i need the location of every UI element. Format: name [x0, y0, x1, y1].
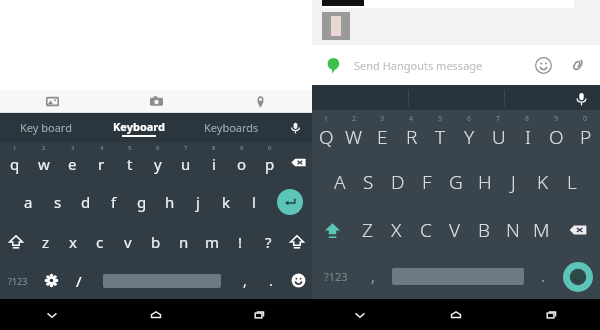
button[interactable]: g	[128, 182, 156, 222]
button[interactable]: Keyboard	[92, 113, 185, 142]
button[interactable]: 3	[368, 110, 397, 158]
button[interactable]: Shift	[282, 222, 312, 262]
button[interactable]: Space	[386, 254, 530, 299]
button[interactable]: Emoji	[556, 254, 600, 299]
button[interactable]: /	[66, 262, 92, 299]
button[interactable]: Key board	[0, 113, 92, 142]
staticText: V	[449, 217, 461, 243]
button[interactable]: M	[527, 206, 556, 254]
button[interactable]: Backspace	[556, 206, 600, 254]
button[interactable]: n	[170, 222, 198, 262]
staticText: 0	[583, 114, 588, 124]
button[interactable]: S	[354, 158, 383, 206]
button[interactable]: Keyboards	[185, 113, 278, 142]
button[interactable]: F	[412, 158, 441, 206]
button[interactable]: G	[441, 158, 470, 206]
button[interactable]: ,	[232, 262, 258, 299]
button[interactable]: a	[14, 182, 43, 222]
button[interactable]: Emoji	[530, 52, 556, 78]
button[interactable]: 4	[87, 142, 116, 182]
button[interactable]: Shift	[0, 222, 32, 262]
button[interactable]: 8	[200, 142, 228, 182]
button[interactable]: 5	[426, 110, 455, 158]
button[interactable]: f	[100, 182, 128, 222]
staticText: .	[541, 267, 545, 286]
button[interactable]: Emoji	[284, 262, 312, 299]
button[interactable]: 0	[256, 142, 284, 182]
button[interactable]: 2	[340, 110, 368, 158]
button[interactable]: Recents	[208, 299, 312, 330]
button[interactable]: 9	[542, 110, 571, 158]
button[interactable]: Shift	[312, 206, 352, 254]
button[interactable]: 1	[0, 142, 29, 182]
button[interactable]: j	[184, 182, 212, 222]
button[interactable]: Gallery	[0, 90, 104, 113]
button[interactable]: Back	[312, 299, 408, 330]
button[interactable]: Location	[208, 90, 312, 113]
button[interactable]: Voice input	[278, 113, 312, 142]
button[interactable]: m	[198, 222, 226, 262]
button[interactable]: 5	[116, 142, 144, 182]
button[interactable]: h	[156, 182, 184, 222]
button[interactable]: z	[32, 222, 59, 262]
button[interactable]: Camera	[104, 90, 208, 113]
staticText: ?123	[8, 275, 28, 287]
button[interactable]: .	[530, 254, 556, 299]
button[interactable]: c	[86, 222, 114, 262]
button[interactable]: C	[411, 206, 440, 254]
staticText: i	[212, 154, 216, 174]
button[interactable]: b	[142, 222, 170, 262]
button[interactable]: B	[469, 206, 498, 254]
staticText: 3	[71, 144, 75, 152]
button[interactable]: ,	[360, 254, 386, 299]
button[interactable]: 4	[397, 110, 426, 158]
button[interactable]: v	[114, 222, 142, 262]
button[interactable]: A	[326, 158, 354, 206]
button[interactable]: 6	[455, 110, 484, 158]
button[interactable]: 9	[228, 142, 256, 182]
button[interactable]: Recents	[504, 299, 600, 330]
button[interactable]: l	[240, 182, 268, 222]
button[interactable]: 3	[58, 142, 87, 182]
button[interactable]: !	[226, 222, 254, 262]
button[interactable]: L	[557, 158, 586, 206]
button[interactable]: Space	[92, 262, 232, 299]
button[interactable]: Enter	[268, 182, 312, 222]
button[interactable]: Voice input	[572, 89, 590, 107]
button[interactable]: Z	[352, 206, 382, 254]
button[interactable]: ?123	[0, 262, 36, 299]
button[interactable]: Attach	[564, 52, 590, 78]
button[interactable]: X	[382, 206, 411, 254]
button[interactable]: 7	[172, 142, 200, 182]
button[interactable]: .	[258, 262, 284, 299]
button[interactable]: k	[212, 182, 240, 222]
button[interactable]: Back	[0, 299, 104, 330]
button[interactable]: Home	[408, 299, 504, 330]
button[interactable]: Voice input	[505, 85, 600, 110]
button[interactable]: d	[72, 182, 100, 222]
button[interactable]: Backspace	[284, 142, 312, 182]
button[interactable]: x	[59, 222, 86, 262]
button[interactable]: N	[498, 206, 527, 254]
button[interactable]: 0	[571, 110, 600, 158]
button[interactable]: s	[43, 182, 72, 222]
button[interactable]: Settings	[36, 262, 66, 299]
button[interactable]: 7	[484, 110, 513, 158]
button[interactable]: H	[470, 158, 499, 206]
button[interactable]: ?123	[312, 254, 360, 299]
button[interactable]: K	[528, 158, 557, 206]
button[interactable]: D	[383, 158, 412, 206]
button[interactable]: V	[440, 206, 469, 254]
button[interactable]: Home	[104, 299, 208, 330]
button[interactable]: Hangouts	[324, 56, 342, 74]
staticText: g	[137, 192, 147, 212]
button[interactable]: 1	[312, 110, 340, 158]
button[interactable]: 8	[513, 110, 542, 158]
button[interactable]: 6	[144, 142, 172, 182]
button[interactable]: 2	[29, 142, 58, 182]
button[interactable]: Send Hangouts message	[354, 58, 530, 73]
button[interactable]: J	[499, 158, 528, 206]
button[interactable]: ?	[254, 222, 282, 262]
